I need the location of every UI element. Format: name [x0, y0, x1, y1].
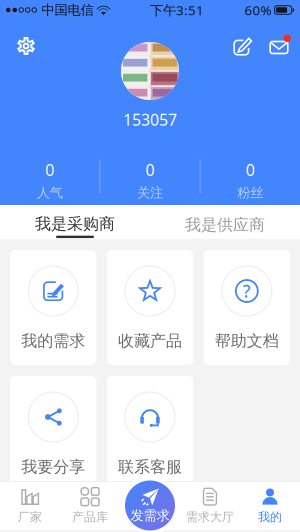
- staticText: 我的: [258, 510, 282, 524]
- button[interactable]: 需求大厅: [180, 481, 240, 530]
- staticText: 收藏产品: [118, 331, 182, 351]
- staticText: 0: [145, 159, 154, 180]
- button[interactable]: Compose: [225, 28, 261, 64]
- button[interactable]: 联系客服: [107, 376, 193, 491]
- button[interactable]: 收藏产品: [107, 250, 193, 365]
- button[interactable]: 我的需求: [10, 250, 96, 365]
- staticText: 我是供应商: [185, 215, 265, 235]
- button[interactable]: Settings: [8, 28, 44, 64]
- button[interactable]: 0: [0, 159, 99, 193]
- staticText: 0: [45, 159, 54, 180]
- button[interactable]: 0: [100, 159, 200, 193]
- staticText: 人气: [37, 184, 63, 201]
- staticText: 0: [246, 159, 255, 180]
- button[interactable]: Messages: [263, 28, 297, 64]
- button[interactable]: 我要分享: [10, 376, 96, 491]
- staticText: ?: [243, 279, 251, 302]
- staticText: 帮助文档: [215, 331, 279, 351]
- staticText: 发需求: [130, 507, 169, 524]
- staticText: 下午3:51: [150, 1, 204, 19]
- staticText: 中国电信: [41, 2, 93, 18]
- button[interactable]: 厂家: [0, 481, 60, 530]
- staticText: 需求大厅: [186, 510, 234, 524]
- staticText: 关注: [137, 184, 163, 201]
- staticText: 厂家: [18, 510, 42, 524]
- staticText: 联系客服: [118, 457, 182, 477]
- button[interactable]: ?: [204, 250, 290, 365]
- staticText: 产品库: [72, 510, 108, 524]
- staticText: 我要分享: [21, 457, 85, 477]
- staticText: 我是采购商: [35, 214, 115, 234]
- button[interactable]: 产品库: [60, 481, 120, 530]
- staticText: 我的需求: [21, 331, 85, 351]
- button[interactable]: 发需求: [121, 477, 178, 532]
- button[interactable]: 我是供应商: [150, 205, 300, 239]
- staticText: 153057: [123, 109, 177, 130]
- staticText: 60%: [245, 1, 272, 19]
- button[interactable]: 我是采购商: [0, 205, 150, 239]
- button[interactable]: 0: [201, 159, 300, 193]
- button[interactable]: 我的: [240, 481, 300, 530]
- staticText: 粉丝: [237, 184, 263, 201]
